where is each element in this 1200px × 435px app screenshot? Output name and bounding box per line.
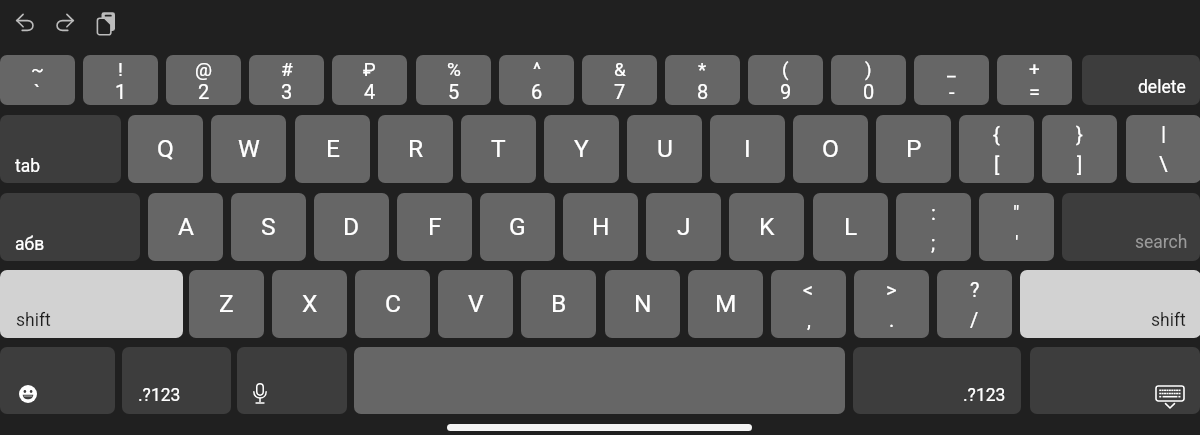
staticText: + [1029, 58, 1040, 80]
button[interactable]: Redo [45, 1, 86, 42]
button[interactable]: L [813, 193, 888, 261]
button[interactable]: H [563, 193, 638, 261]
staticText: shift [1151, 310, 1186, 331]
button[interactable]: | [1126, 115, 1200, 183]
button[interactable]: R [378, 115, 453, 183]
button[interactable]: } [1042, 115, 1117, 183]
button[interactable]: & [582, 55, 657, 105]
staticText: ~ [31, 58, 44, 80]
staticText: 9 [780, 80, 792, 103]
button[interactable]: Clipboard [85, 2, 127, 44]
staticText: . [889, 308, 895, 331]
staticText: O [822, 134, 839, 163]
button[interactable]: * [665, 55, 740, 105]
staticText: [ [994, 153, 1000, 176]
button[interactable]: N [605, 270, 680, 338]
button[interactable]: E [295, 115, 370, 183]
staticText: D [343, 212, 360, 241]
button[interactable]: K [729, 193, 804, 261]
staticText: _ [947, 58, 956, 80]
button[interactable]: абв [0, 193, 140, 261]
staticText: ; [931, 231, 936, 254]
button[interactable]: Hide keyboard [1030, 347, 1200, 414]
staticText: .?123 [963, 385, 1006, 406]
staticText: 2 [198, 80, 210, 103]
staticText: delete [1138, 77, 1186, 98]
button[interactable]: < [771, 270, 846, 338]
button[interactable]: B [521, 270, 596, 338]
button[interactable]: F [397, 193, 472, 261]
button[interactable]: + [997, 55, 1072, 105]
button[interactable]: tab [0, 115, 121, 183]
button[interactable]: Q [128, 115, 203, 183]
button[interactable]: Voice input [237, 347, 347, 414]
staticText: V [468, 289, 484, 318]
button[interactable]: .?123 [853, 347, 1021, 414]
button[interactable]: G [480, 193, 555, 261]
button[interactable]: % [416, 55, 491, 105]
staticText: S [261, 212, 276, 241]
staticText: ? [970, 278, 980, 301]
staticText: L [844, 212, 858, 241]
button[interactable]: delete [1082, 55, 1200, 105]
staticText: B [551, 289, 567, 318]
staticText: 1 [115, 80, 127, 103]
staticText: ^ [533, 58, 541, 80]
button[interactable]: ) [831, 55, 906, 105]
button[interactable]: ^ [499, 55, 574, 105]
staticText: C [385, 289, 401, 318]
button[interactable]: W [211, 115, 286, 183]
staticText: 7 [614, 80, 626, 103]
staticText: A [178, 212, 194, 241]
button[interactable]: { [959, 115, 1034, 183]
staticText: X [302, 289, 318, 318]
button[interactable]: ? [937, 270, 1012, 338]
button[interactable]: Z [189, 270, 264, 338]
staticText: ₽ [363, 58, 376, 80]
button[interactable]: > [854, 270, 929, 338]
button[interactable]: Emoji [0, 347, 115, 414]
button[interactable]: search [1062, 193, 1200, 261]
staticText: , [807, 308, 811, 331]
button[interactable]: shift [0, 270, 183, 338]
button[interactable]: ! [83, 55, 158, 105]
staticText: ) [865, 58, 872, 80]
button[interactable]: D [314, 193, 389, 261]
button[interactable]: Undo [7, 1, 48, 42]
button[interactable]: _ [914, 55, 989, 105]
staticText: " [1013, 201, 1020, 224]
button[interactable]: ( [748, 55, 823, 105]
button[interactable]: S [231, 193, 306, 261]
button[interactable]: @ [166, 55, 241, 105]
staticText: : [931, 201, 936, 224]
button[interactable]: A [148, 193, 223, 261]
button[interactable]: .?123 [122, 347, 231, 414]
button[interactable]: O [793, 115, 868, 183]
button[interactable]: " [979, 193, 1054, 261]
button[interactable]: J [646, 193, 721, 261]
staticText: ] [1077, 153, 1083, 176]
staticText: J [677, 212, 691, 241]
button[interactable]: M [688, 270, 763, 338]
staticText: 5 [448, 80, 460, 103]
button[interactable]: U [627, 115, 702, 183]
button[interactable]: V [438, 270, 513, 338]
button[interactable]: # [249, 55, 324, 105]
button[interactable]: T [461, 115, 536, 183]
button[interactable]: C [355, 270, 430, 338]
staticText: R [408, 134, 424, 163]
button[interactable]: X [272, 270, 347, 338]
staticText: # [281, 58, 293, 80]
staticText: Q [157, 134, 174, 163]
staticText: \ [1159, 152, 1168, 177]
staticText: K [759, 212, 775, 241]
button[interactable]: Y [544, 115, 619, 183]
button[interactable]: P [876, 115, 951, 183]
button[interactable]: shift [1020, 270, 1200, 338]
button[interactable]: ~ [0, 55, 75, 105]
button[interactable]: : [896, 193, 971, 261]
staticText: - [949, 80, 955, 103]
button[interactable]: I [710, 115, 785, 183]
button[interactable]: ₽ [332, 55, 407, 105]
